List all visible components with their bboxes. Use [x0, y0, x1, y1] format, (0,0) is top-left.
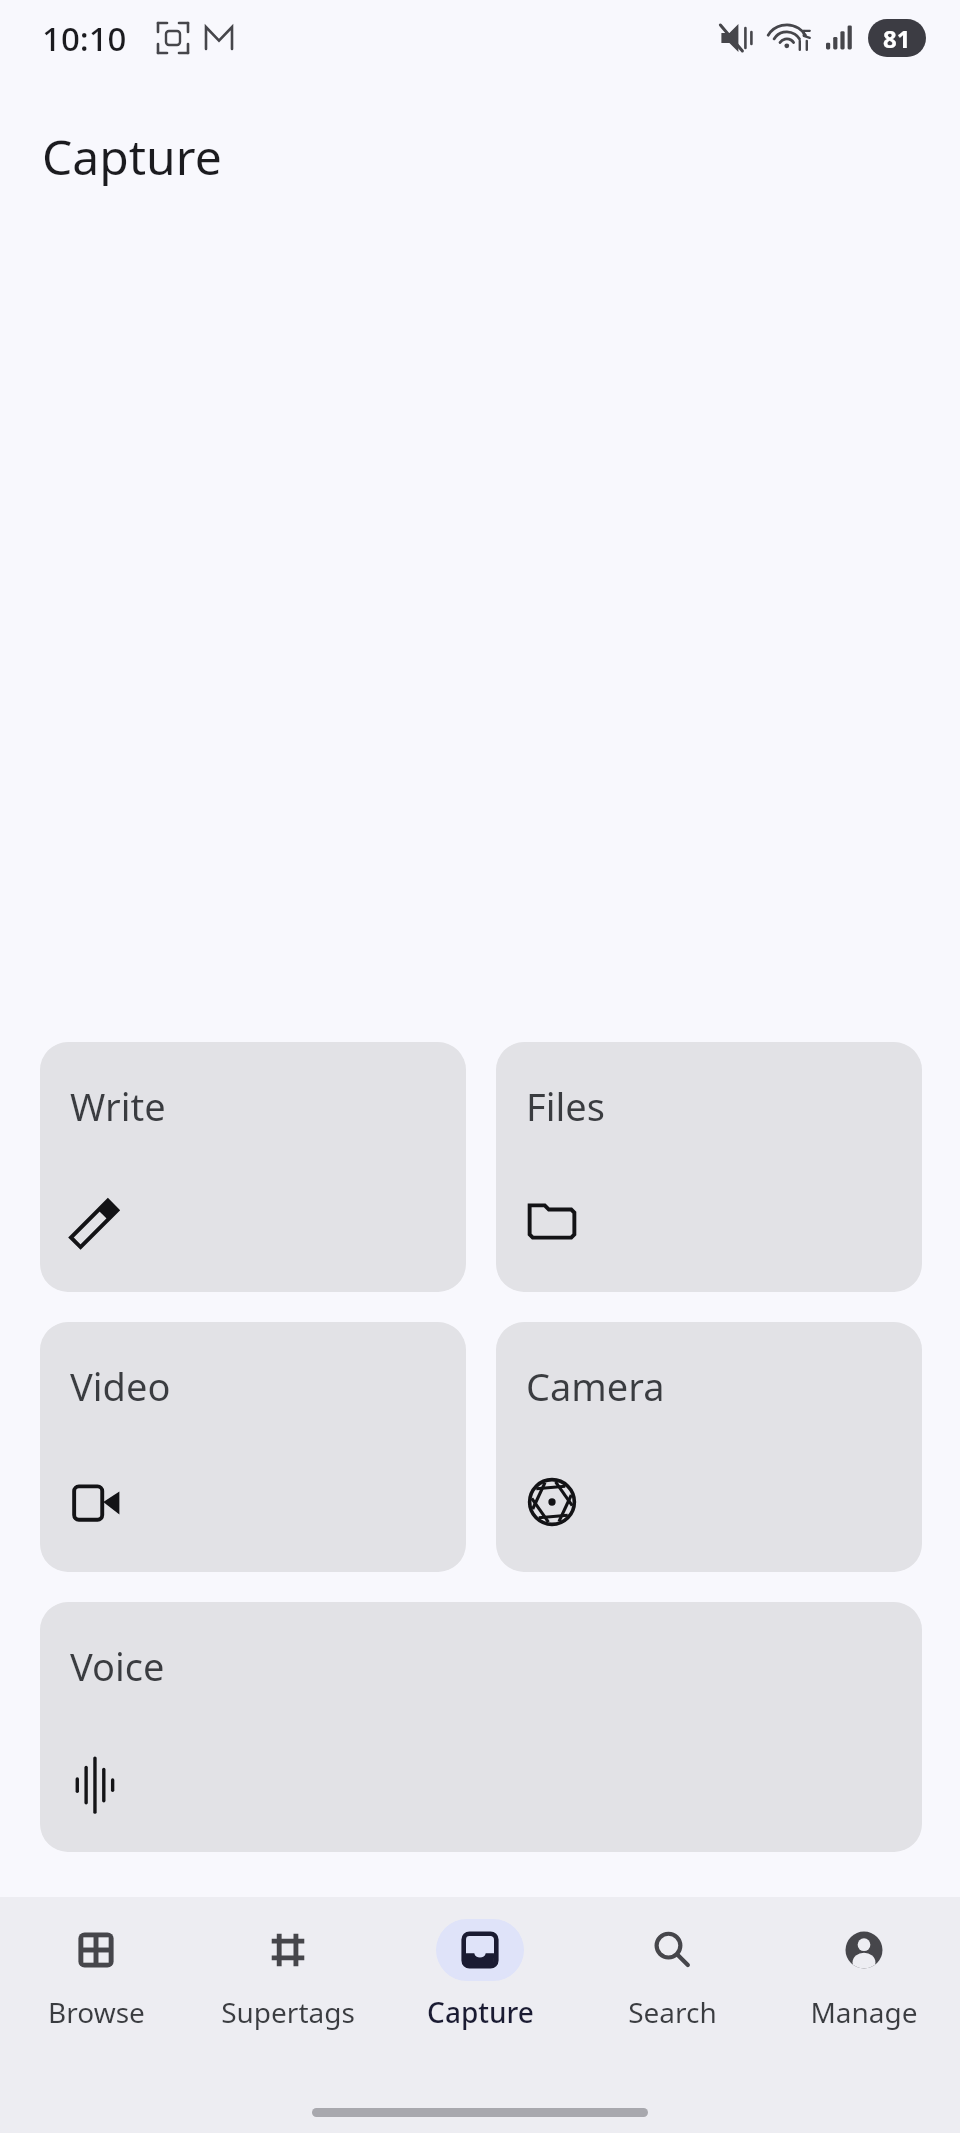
staticText: 81	[883, 22, 911, 55]
staticText: Write	[70, 1080, 166, 1132]
other: Browse	[74, 1928, 118, 1972]
button[interactable]: Write	[40, 1042, 466, 1292]
staticText: Capture	[427, 1993, 534, 2031]
staticText: 10:10	[42, 16, 127, 61]
button[interactable]: Manage	[768, 1919, 960, 2031]
button[interactable]: Browse	[0, 1919, 192, 2031]
button[interactable]: Video	[40, 1322, 466, 1572]
staticText: Capture	[42, 124, 222, 189]
staticText: Manage	[810, 1993, 918, 2031]
button[interactable]: Supertags	[192, 1919, 384, 2031]
other: Capture	[458, 1928, 502, 1972]
staticText: Video	[70, 1360, 171, 1412]
button[interactable]: Search	[576, 1919, 768, 2031]
button[interactable]: Files	[496, 1042, 922, 1292]
staticText: Voice	[70, 1640, 165, 1692]
button[interactable]: Camera	[496, 1322, 922, 1572]
staticText: Supertags	[221, 1993, 355, 2031]
other: Search	[650, 1928, 694, 1972]
staticText: Files	[526, 1080, 605, 1132]
other: Manage	[842, 1928, 886, 1972]
staticText: Browse	[48, 1993, 145, 2031]
staticText: Camera	[526, 1360, 665, 1412]
other: Supertags	[266, 1928, 310, 1972]
button[interactable]: Voice	[40, 1602, 922, 1852]
button[interactable]: Capture	[384, 1919, 576, 2031]
staticText: Search	[628, 1993, 717, 2031]
